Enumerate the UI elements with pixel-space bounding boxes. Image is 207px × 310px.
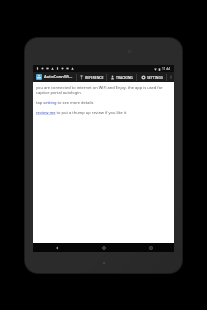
staticText: SETTINGS [147, 75, 163, 80]
button[interactable]: AutoConnWi... [33, 72, 76, 82]
button[interactable]: TRACKING [107, 72, 136, 82]
button[interactable]: More options [167, 72, 174, 82]
button[interactable]: tap setting to see more details [36, 100, 94, 105]
staticText: AutoConnWi... [44, 74, 73, 80]
staticText: you are connected to internet on WiFi an… [36, 85, 171, 95]
button[interactable]: Home [80, 243, 127, 252]
staticText: 11:44 [162, 67, 171, 71]
staticText: TRACKING [116, 75, 133, 80]
staticText: REFERENCE [85, 75, 104, 80]
button[interactable]: Back [33, 243, 80, 252]
button[interactable]: REFERENCE [77, 72, 106, 82]
button[interactable]: SETTINGS [137, 72, 166, 82]
staticText: review me to put a thump up review if yo… [36, 110, 127, 115]
button[interactable]: Recent apps [127, 243, 174, 252]
staticText: tap setting to see more details [36, 100, 94, 105]
button[interactable]: review me to put a thump up review if yo… [36, 110, 127, 115]
